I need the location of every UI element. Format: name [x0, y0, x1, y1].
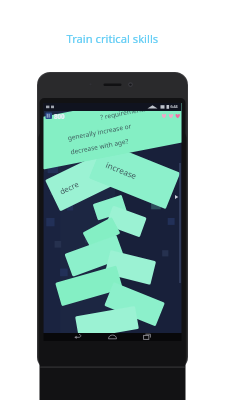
- button[interactable]: Train critical skills promo screen: [0, 0, 225, 400]
